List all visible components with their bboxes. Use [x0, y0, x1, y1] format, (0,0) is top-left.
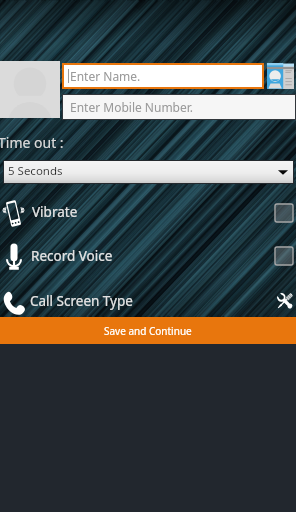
staticText: 5 Seconds: [8, 163, 63, 179]
staticText: Time out :: [0, 133, 64, 152]
staticText: Enter Name.: [70, 68, 141, 84]
button[interactable]: Enter Mobile Number.: [63, 95, 295, 119]
button[interactable]: Record Voice: [0, 237, 296, 280]
staticText: Call Screen Type: [30, 292, 133, 310]
button[interactable]: Save and Continue: [0, 317, 296, 344]
staticText: Vibrate: [32, 203, 78, 221]
button[interactable]: Enter Name.: [64, 65, 262, 87]
staticText: Record Voice: [31, 247, 113, 265]
staticText: Enter Mobile Number.: [70, 99, 194, 115]
button[interactable]: 5 Seconds: [4, 161, 293, 183]
button[interactable]: Pick contact: [265, 60, 296, 91]
button[interactable]: Vibrate: [0, 194, 296, 237]
button[interactable]: Call Screen Type: [0, 284, 296, 317]
staticText: Save and Continue: [104, 324, 192, 338]
